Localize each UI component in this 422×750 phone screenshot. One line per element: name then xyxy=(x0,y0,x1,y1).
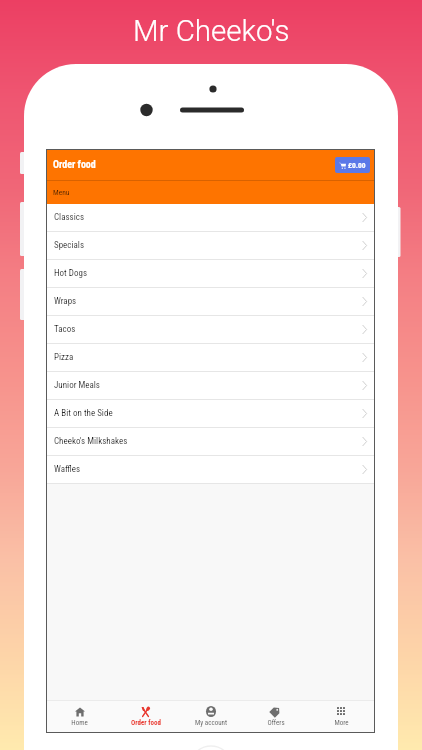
button[interactable]: A Bit on the Side xyxy=(47,400,374,428)
button[interactable]: Waffles xyxy=(47,456,374,484)
button[interactable]: Home xyxy=(47,700,112,732)
staticText: Order food xyxy=(53,159,96,171)
button[interactable]: Hot Dogs xyxy=(47,260,374,288)
staticText: Junior Meals xyxy=(54,380,100,391)
button[interactable]: Specials xyxy=(47,232,374,260)
staticText: Pizza xyxy=(54,352,74,363)
button[interactable]: Pizza xyxy=(47,344,374,372)
staticText: Specials xyxy=(54,240,85,251)
button[interactable]: Menu xyxy=(47,181,374,204)
staticText: Waffles xyxy=(54,464,81,475)
staticText: Hot Dogs xyxy=(54,268,88,279)
staticText: Offers xyxy=(267,719,285,727)
staticText: Order food xyxy=(131,719,161,727)
staticText: My account xyxy=(195,719,227,727)
button[interactable]: Wraps xyxy=(47,288,374,316)
staticText: Classics xyxy=(54,212,85,223)
button[interactable]: Order food xyxy=(47,150,374,180)
staticText: Tacos xyxy=(54,324,76,335)
staticText: Wraps xyxy=(54,296,77,307)
button[interactable]: My account xyxy=(178,700,243,732)
staticText: A Bit on the Side xyxy=(54,408,113,419)
button[interactable]: Classics xyxy=(47,204,374,232)
button[interactable]: Tacos xyxy=(47,316,374,344)
staticText: Mr Cheeko's xyxy=(133,14,290,49)
button[interactable]: £0.00 xyxy=(335,157,370,173)
button[interactable]: Junior Meals xyxy=(47,372,374,400)
button[interactable]: Cheeko's Milkshakes xyxy=(47,428,374,456)
button[interactable]: Order food xyxy=(113,700,178,732)
button[interactable]: More xyxy=(309,700,374,732)
staticText: Home xyxy=(71,719,88,727)
staticText: More xyxy=(334,719,349,727)
button[interactable]: Offers xyxy=(243,700,308,732)
staticText: Cheeko's Milkshakes xyxy=(54,436,128,447)
staticText: Menu xyxy=(53,188,70,197)
staticText: £0.00 xyxy=(348,161,366,170)
